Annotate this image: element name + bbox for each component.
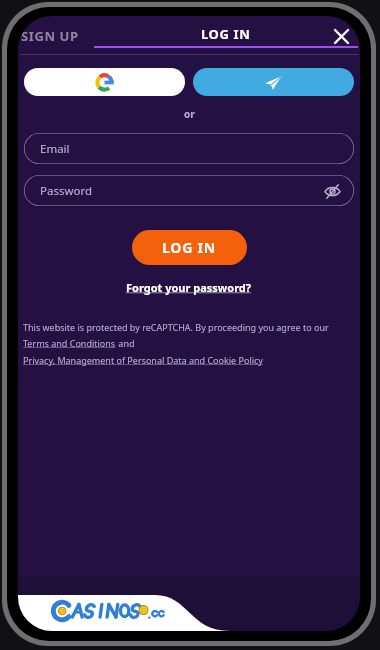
- staticText: Password: [40, 183, 93, 199]
- button[interactable]: Terms and Conditions: [23, 337, 116, 349]
- staticText: This website is protected by reCAPTCHA. …: [23, 321, 329, 333]
- button[interactable]: Privacy, Management of Personal Data and…: [23, 354, 263, 366]
- button[interactable]: Password: [24, 175, 354, 206]
- button[interactable]: Sign in with Google: [24, 68, 185, 96]
- button[interactable]: Forgot your password?: [122, 278, 256, 297]
- staticText: LOG IN: [162, 238, 217, 257]
- button[interactable]: Sign in with Telegram: [193, 68, 354, 96]
- button[interactable]: LOG IN: [92, 25, 360, 48]
- staticText: Forgot your password?: [126, 280, 252, 295]
- staticText: Terms and Conditions: [23, 337, 116, 349]
- button[interactable]: Email: [24, 133, 354, 164]
- button[interactable]: LOG IN: [132, 230, 247, 265]
- staticText: or: [184, 107, 195, 121]
- button[interactable]: SIGN UP: [18, 23, 82, 49]
- staticText: Email: [40, 141, 70, 157]
- staticText: SIGN UP: [21, 27, 79, 45]
- button[interactable]: Close: [326, 21, 356, 51]
- staticText: LOG IN: [201, 25, 251, 43]
- button[interactable]: Show password: [321, 180, 343, 202]
- staticText: and: [116, 337, 135, 349]
- button[interactable]: Casinos.cc home: [52, 600, 160, 622]
- staticText: Privacy, Management of Personal Data and…: [23, 354, 263, 366]
